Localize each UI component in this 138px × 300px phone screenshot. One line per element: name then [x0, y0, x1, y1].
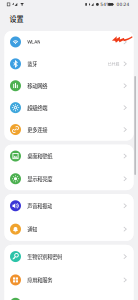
staticText: 更多连接 — [27, 126, 47, 133]
button[interactable]: 桌面和壁纸 — [4, 145, 133, 167]
staticText: 设置 — [9, 13, 23, 24]
button[interactable]: 应用和服务 — [4, 268, 133, 292]
staticText: 声音和振动 — [27, 202, 52, 210]
staticText: 00:24 — [117, 2, 130, 7]
button[interactable]: 通知 — [4, 217, 133, 241]
staticText: 超级终端 — [27, 104, 47, 111]
button[interactable]: 电池 — [4, 292, 133, 300]
button[interactable]: 生物识别和密码 — [4, 245, 133, 268]
staticText: 显示和亮度 — [27, 175, 52, 182]
staticText: 应用和服务 — [27, 276, 52, 284]
button[interactable]: 更多连接 — [4, 119, 133, 140]
staticText: 桌面和壁纸 — [27, 152, 52, 160]
staticText: 已开启 — [108, 61, 120, 67]
button[interactable]: WLAN — [4, 31, 133, 53]
button[interactable]: 移动网络 — [4, 75, 133, 97]
button[interactable]: 蓝牙 — [4, 53, 133, 75]
button[interactable]: 显示和亮度 — [4, 167, 133, 190]
staticText: WLAN — [27, 39, 40, 45]
button[interactable]: 超级终端 — [4, 97, 133, 119]
staticText: 54% — [100, 2, 110, 7]
staticText: 生物识别和密码 — [27, 253, 62, 260]
button[interactable]: 声音和振动 — [4, 194, 133, 217]
staticText: 蓝牙 — [27, 60, 37, 68]
staticText: 通知 — [27, 225, 37, 233]
staticText: 移动网络 — [27, 82, 47, 89]
